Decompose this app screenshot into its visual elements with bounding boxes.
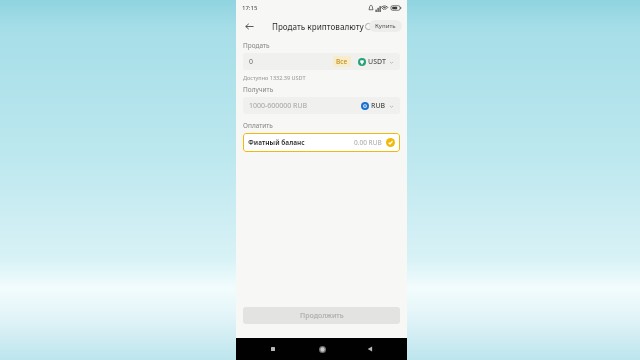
button[interactable]: Фиатный баланс: [243, 133, 400, 152]
staticText: 17:15: [242, 4, 258, 12]
staticText: Продать криптовалюту: [272, 21, 364, 32]
button[interactable]: Продолжить: [243, 307, 400, 324]
button[interactable]: RUB: [361, 101, 394, 111]
button[interactable]: Back: [240, 17, 258, 35]
staticText: Все: [336, 57, 348, 66]
staticText: Получить: [243, 85, 274, 94]
staticText: RUB: [371, 101, 386, 111]
button[interactable]: USDT: [358, 57, 394, 67]
staticText: 1000-600000 RUB: [249, 101, 308, 111]
staticText: Оплатить: [243, 121, 273, 130]
button[interactable]: 0: [243, 53, 400, 70]
staticText: Купить: [375, 22, 396, 30]
staticText: USDT: [368, 57, 386, 67]
staticText: 0.00 RUB: [354, 138, 382, 147]
staticText: Доступно 1332.39 USDT: [243, 74, 306, 81]
staticText: Фиатный баланс: [248, 138, 305, 147]
button[interactable]: Все: [333, 56, 351, 67]
button[interactable]: Home: [311, 338, 333, 360]
staticText: Продать: [243, 41, 270, 50]
button[interactable]: Recent apps: [262, 338, 284, 360]
staticText: Продолжить: [300, 311, 344, 321]
button[interactable]: Купить: [369, 20, 402, 32]
staticText: 0: [249, 57, 254, 67]
button[interactable]: 1000-600000 RUB: [243, 97, 400, 114]
button[interactable]: Back: [359, 338, 381, 360]
